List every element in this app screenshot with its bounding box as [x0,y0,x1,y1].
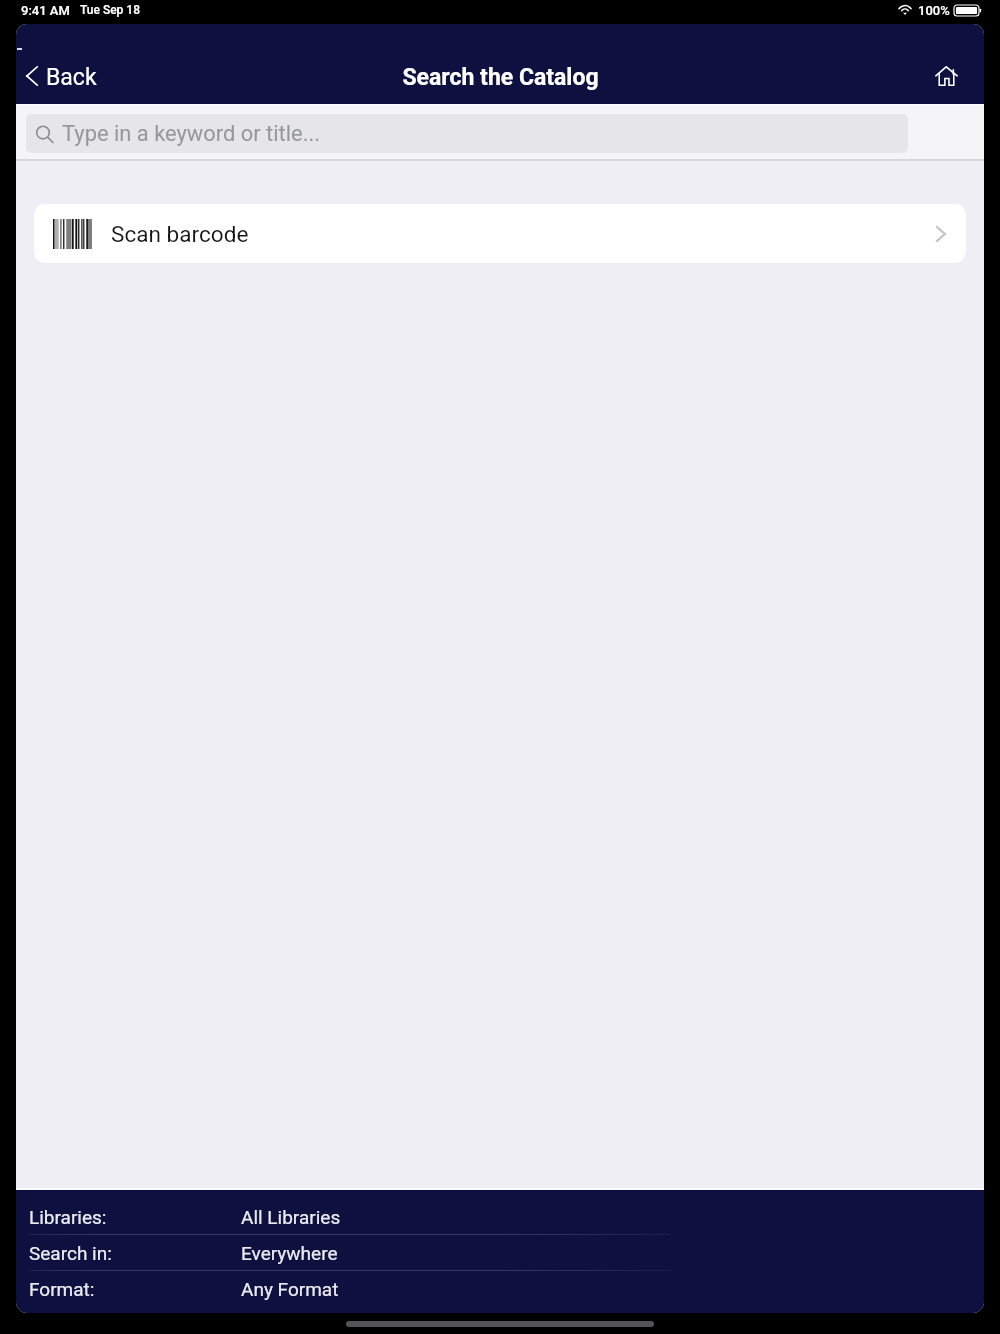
staticText: Search the Catalog [402,64,599,91]
button[interactable]: Search the catalog [26,114,908,153]
staticText: Format: [29,1278,95,1300]
staticText: Tue Sep 18 [80,3,140,17]
staticText: Libraries: [29,1206,107,1228]
button[interactable]: Search in: [16,1235,984,1271]
staticText: Everywhere [241,1242,338,1264]
staticText: Search in: [29,1242,112,1264]
staticText: Scan barcode [111,221,249,247]
button[interactable]: Libraries: [16,1199,984,1235]
staticText: All Libraries [241,1206,341,1228]
button[interactable]: Back [20,57,103,98]
staticText: 9:41 AM [21,3,70,18]
button[interactable]: Home [924,54,968,98]
staticText: Any Format [241,1278,339,1300]
button[interactable]: Format: [16,1271,984,1307]
button[interactable]: Scan barcode [34,204,966,263]
staticText: 100% [918,3,950,18]
staticText: Type in a keyword or title... [62,121,321,147]
staticText: Back [46,64,97,91]
